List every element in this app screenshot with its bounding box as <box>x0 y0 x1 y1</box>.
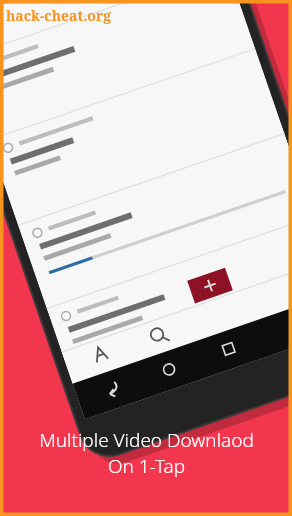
staticText: hack-cheat.org <box>6 6 112 25</box>
staticText: Multiple Video Downlaod On 1-Tap <box>39 427 254 478</box>
button[interactable]: hack-cheat.org <box>6 6 112 25</box>
